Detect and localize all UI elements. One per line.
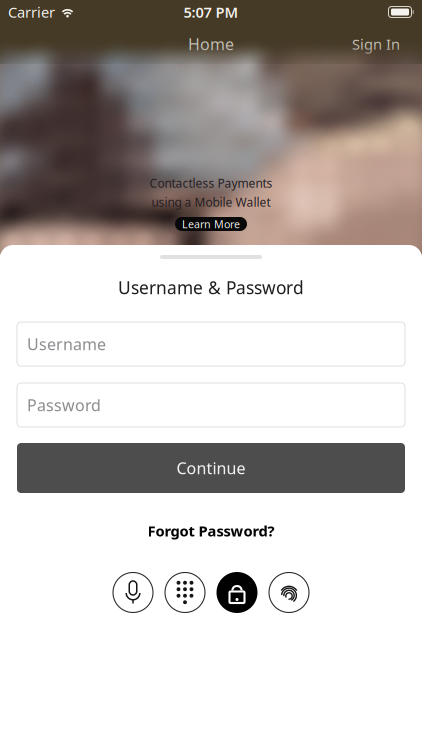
button[interactable]: Voice sign in bbox=[111, 570, 155, 614]
staticText: using a Mobile Wallet bbox=[151, 194, 270, 210]
staticText: Carrier bbox=[8, 2, 55, 22]
button[interactable]: Continue bbox=[17, 443, 405, 493]
button[interactable]: Sign In bbox=[342, 28, 410, 60]
staticText: Username & Password bbox=[118, 276, 304, 299]
staticText: Continue bbox=[176, 457, 245, 479]
staticText: Contactless Payments bbox=[149, 175, 272, 191]
button[interactable]: PIN keypad bbox=[163, 570, 207, 614]
button[interactable]: Home bbox=[176, 27, 246, 61]
staticText: 5:07 PM bbox=[183, 2, 238, 22]
button[interactable]: Password sign in bbox=[215, 570, 259, 614]
staticText: Password bbox=[27, 394, 101, 416]
staticText: Forgot Password? bbox=[147, 521, 274, 540]
staticText: Sign In bbox=[352, 34, 400, 54]
staticText: Home bbox=[188, 33, 234, 55]
staticText: Username bbox=[27, 333, 106, 355]
staticText: Learn More bbox=[182, 217, 240, 231]
button[interactable]: Fingerprint sign in bbox=[267, 570, 311, 614]
button[interactable]: Learn More bbox=[175, 217, 247, 231]
button[interactable]: Forgot Password? bbox=[137, 515, 284, 546]
